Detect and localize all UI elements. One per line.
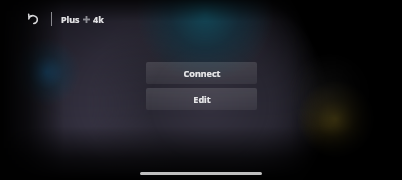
staticText: Plus (61, 13, 80, 25)
staticText: 4k (93, 13, 104, 25)
button[interactable]: Back (24, 10, 42, 28)
button[interactable]: Edit (146, 88, 257, 110)
staticText: Connect (183, 67, 221, 79)
button[interactable]: Connect (146, 62, 257, 84)
staticText: Edit (193, 93, 211, 105)
